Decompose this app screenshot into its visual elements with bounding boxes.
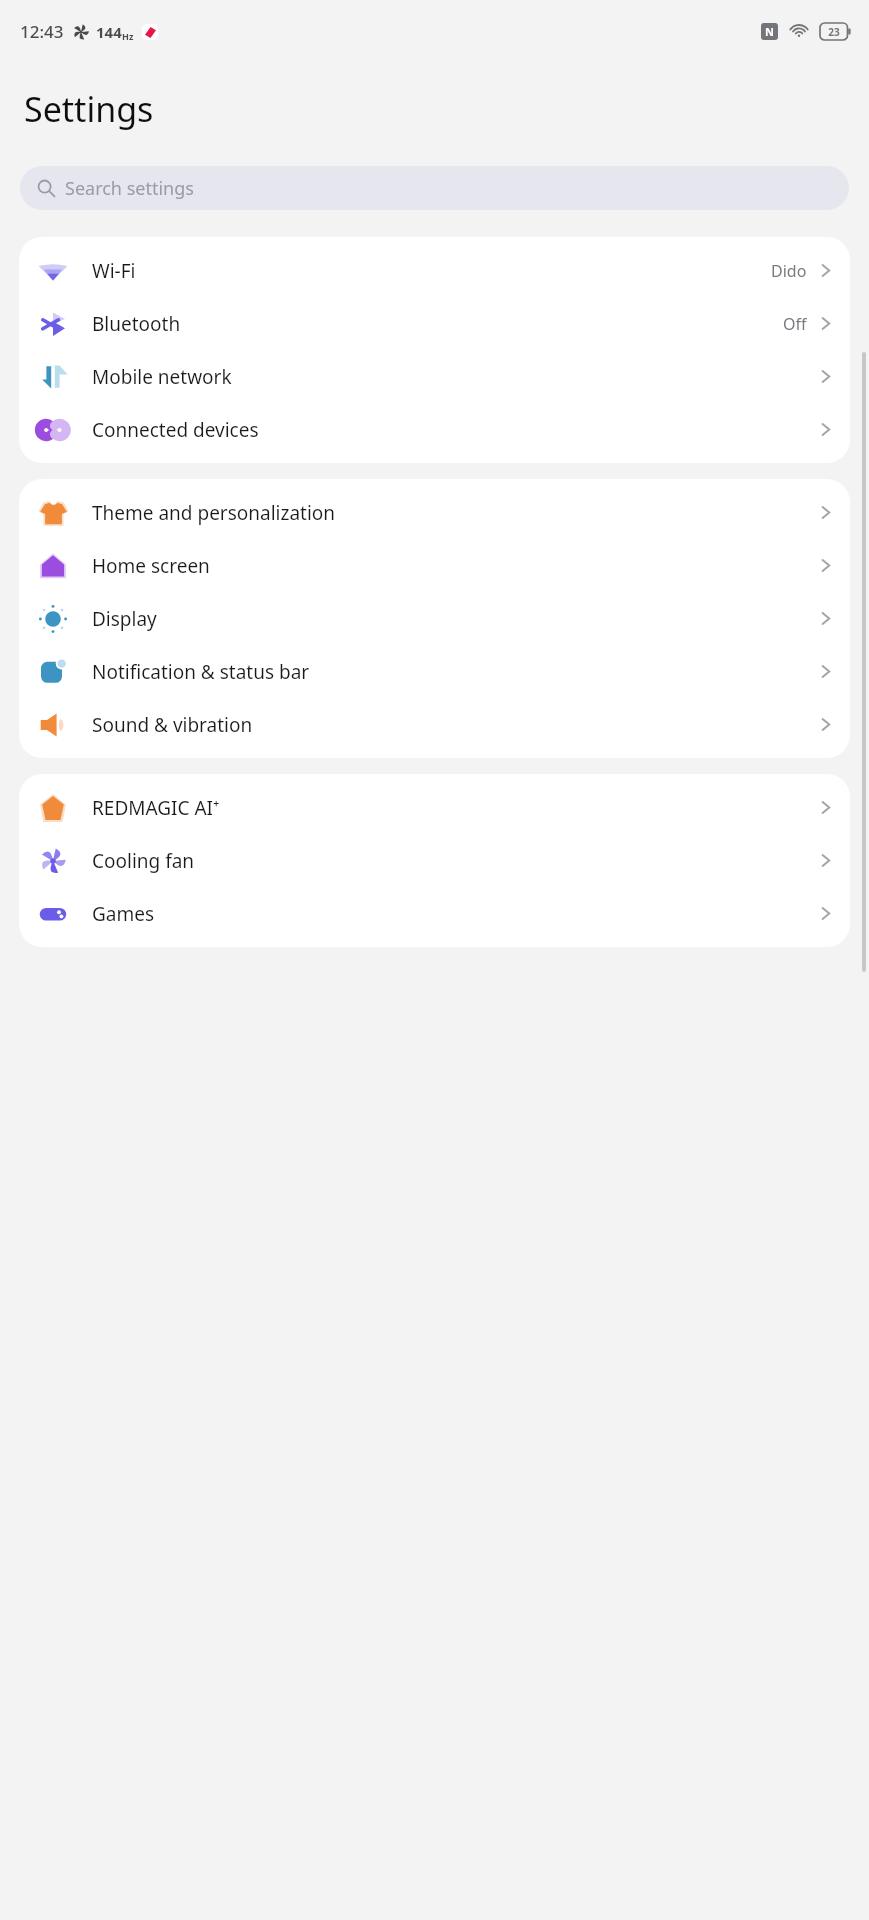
button[interactable]: Mobile network (19, 350, 850, 403)
other: Open Connected devices (817, 421, 834, 438)
button[interactable]: Bluetooth (19, 297, 850, 350)
other: Open Cooling fan (817, 852, 834, 869)
staticText: N (765, 24, 774, 39)
other: Open REDMAGIC AI⁺ (817, 799, 834, 816)
other: Open Sound & vibration (817, 716, 834, 733)
other: Open Mobile network (817, 368, 834, 385)
staticText: Dido (771, 260, 807, 282)
button[interactable]: Cooling fan (19, 834, 850, 887)
button[interactable]: Display (19, 592, 850, 645)
staticText: 23 (828, 25, 840, 39)
staticText: Connected devices (92, 417, 817, 443)
staticText: Hz (122, 30, 134, 42)
other: Open Games (817, 905, 834, 922)
staticText: Games (92, 901, 817, 927)
button[interactable]: Theme and personalization (19, 486, 850, 539)
staticText: Sound & vibration (92, 712, 817, 738)
button[interactable]: Sound & vibration (19, 698, 850, 751)
other: Open Display (817, 610, 834, 627)
button[interactable]: Home screen (19, 539, 850, 592)
staticText: Settings (24, 86, 154, 132)
other: Open Bluetooth (817, 315, 834, 332)
staticText: 12:43 (20, 20, 64, 43)
button[interactable]: Wi-Fi (19, 244, 850, 297)
staticText: Wi-Fi (92, 258, 771, 284)
staticText: Cooling fan (92, 848, 817, 874)
other: Open Home screen (817, 557, 834, 574)
staticText: 144 (96, 22, 122, 42)
other: Open Notification & status bar (817, 663, 834, 680)
staticText: Bluetooth (92, 311, 783, 337)
staticText: Display (92, 606, 817, 632)
staticText: Search settings (65, 176, 194, 201)
staticText: REDMAGIC AI⁺ (92, 795, 817, 821)
staticText: Mobile network (92, 364, 817, 390)
other: Open Theme and personalization (817, 504, 834, 521)
staticText: Off (783, 313, 807, 335)
button[interactable]: REDMAGIC AI⁺ (19, 781, 850, 834)
staticText: Theme and personalization (92, 500, 817, 526)
staticText: Notification & status bar (92, 659, 817, 685)
button[interactable]: Search settings (20, 166, 849, 210)
other: Open Wi-Fi (817, 262, 834, 279)
button[interactable]: Notification & status bar (19, 645, 850, 698)
button[interactable]: Connected devices (19, 403, 850, 456)
button[interactable]: Games (19, 887, 850, 940)
staticText: Home screen (92, 553, 817, 579)
